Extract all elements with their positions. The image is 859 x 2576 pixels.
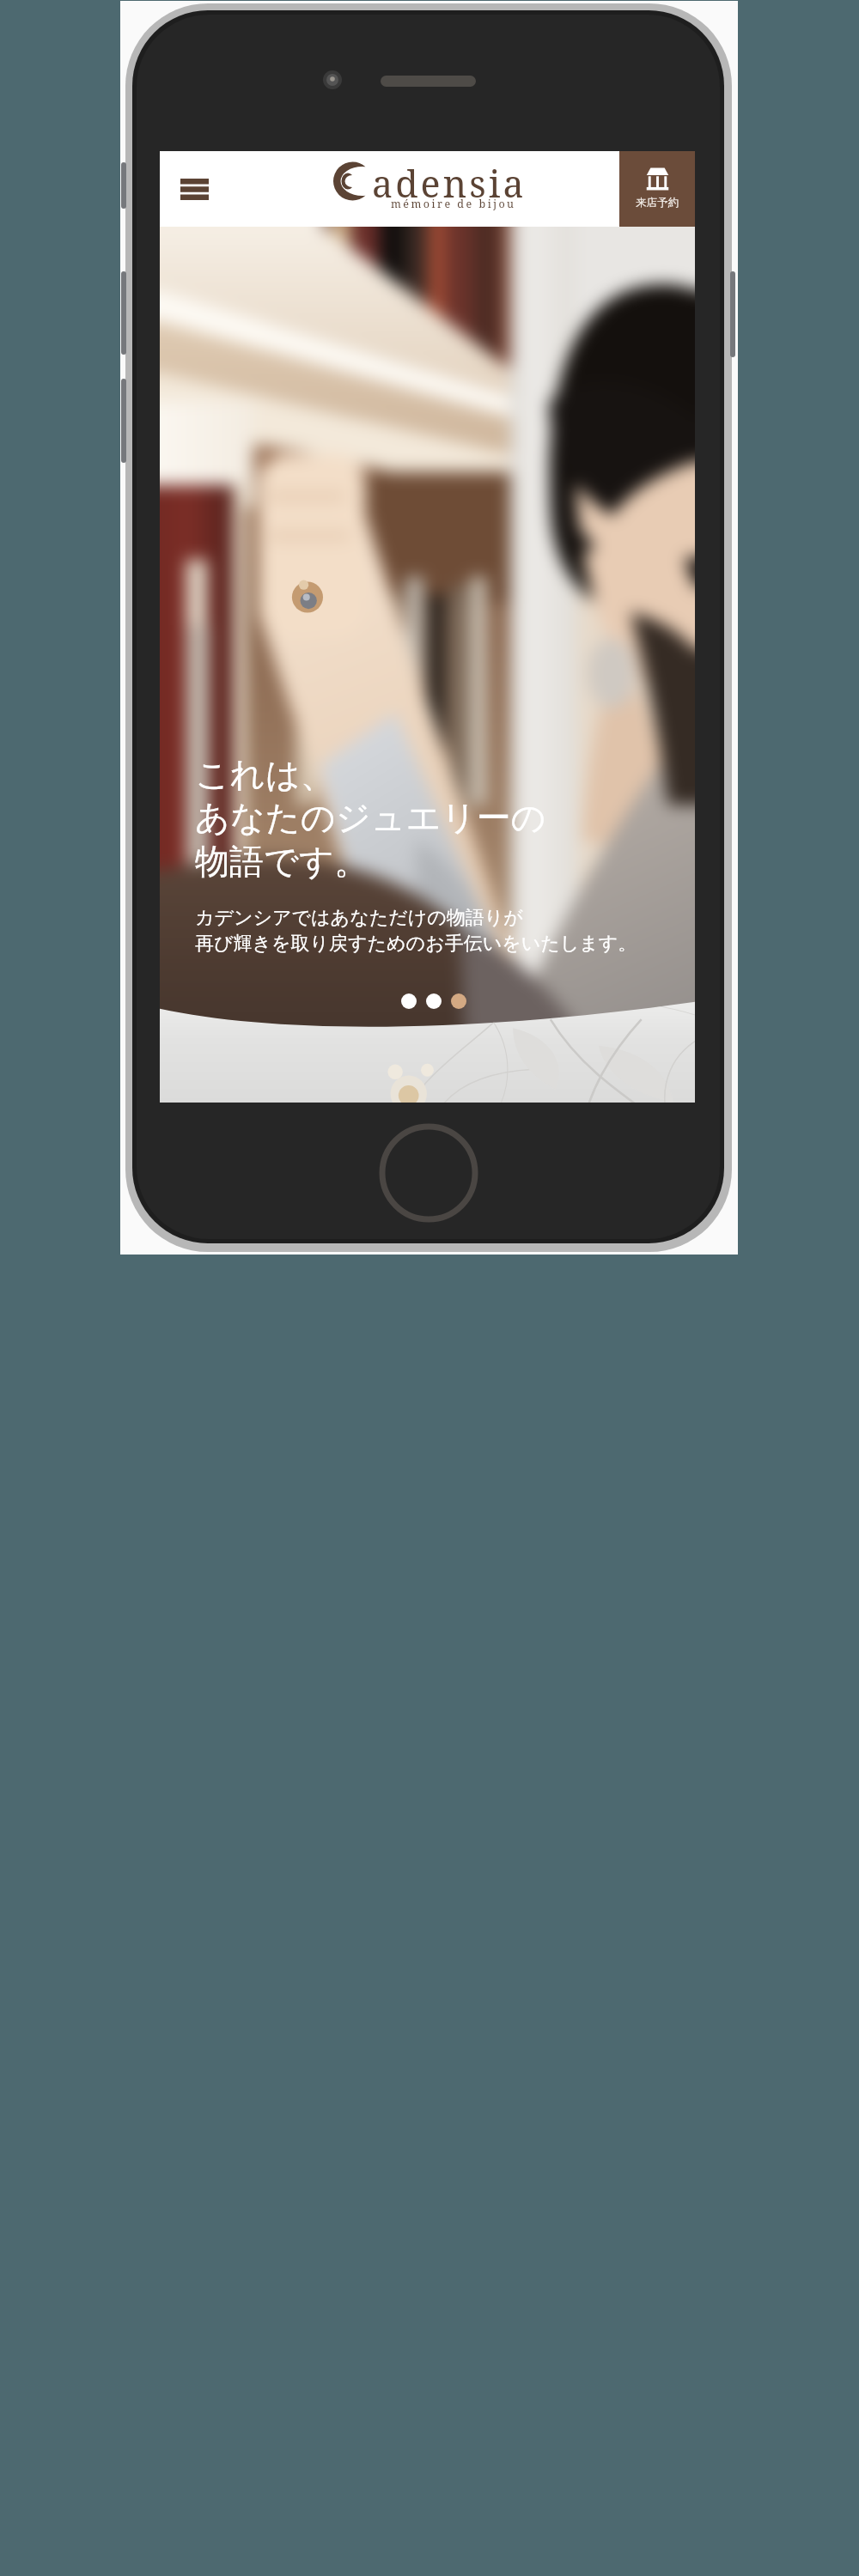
staticText: 来店予約 xyxy=(636,196,679,210)
button[interactable] xyxy=(426,993,442,1009)
button[interactable] xyxy=(451,993,466,1009)
button[interactable]: adensia xyxy=(228,151,619,227)
button[interactable]: 来店予約 xyxy=(619,151,695,227)
staticText: カデンシアではあなただけの物語りが 再び輝きを取り戻すためのお手伝いをいたします… xyxy=(195,906,637,955)
button[interactable] xyxy=(401,993,417,1009)
staticText: adensia xyxy=(372,158,527,209)
button[interactable]: Menu xyxy=(160,151,228,227)
staticText: mémoire de bijou xyxy=(391,197,516,211)
staticText: これは、 あなたのジュエリーの 物語です。 xyxy=(195,753,546,884)
